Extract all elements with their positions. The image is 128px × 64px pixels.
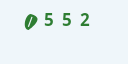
- staticText: 5: [62, 8, 72, 31]
- staticText: 2: [80, 8, 90, 31]
- button[interactable]: Eco leaf: [23, 14, 38, 30]
- staticText: 5: [44, 8, 54, 31]
